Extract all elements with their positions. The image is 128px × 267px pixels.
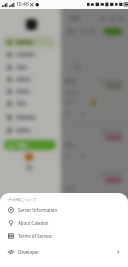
button[interactable]: Server Information [0, 203, 128, 216]
staticText: About Caledon [18, 220, 49, 226]
staticText: 10:46 [16, 1, 29, 8]
staticText: Server Information [18, 207, 58, 213]
staticText: その他について [8, 197, 37, 202]
staticText: Terms of Service [18, 233, 52, 239]
button[interactable]: Terms of Service [0, 229, 128, 242]
staticText: Developer [18, 249, 40, 255]
button[interactable]: About Caledon [0, 216, 128, 229]
button[interactable]: Developer [0, 245, 128, 258]
